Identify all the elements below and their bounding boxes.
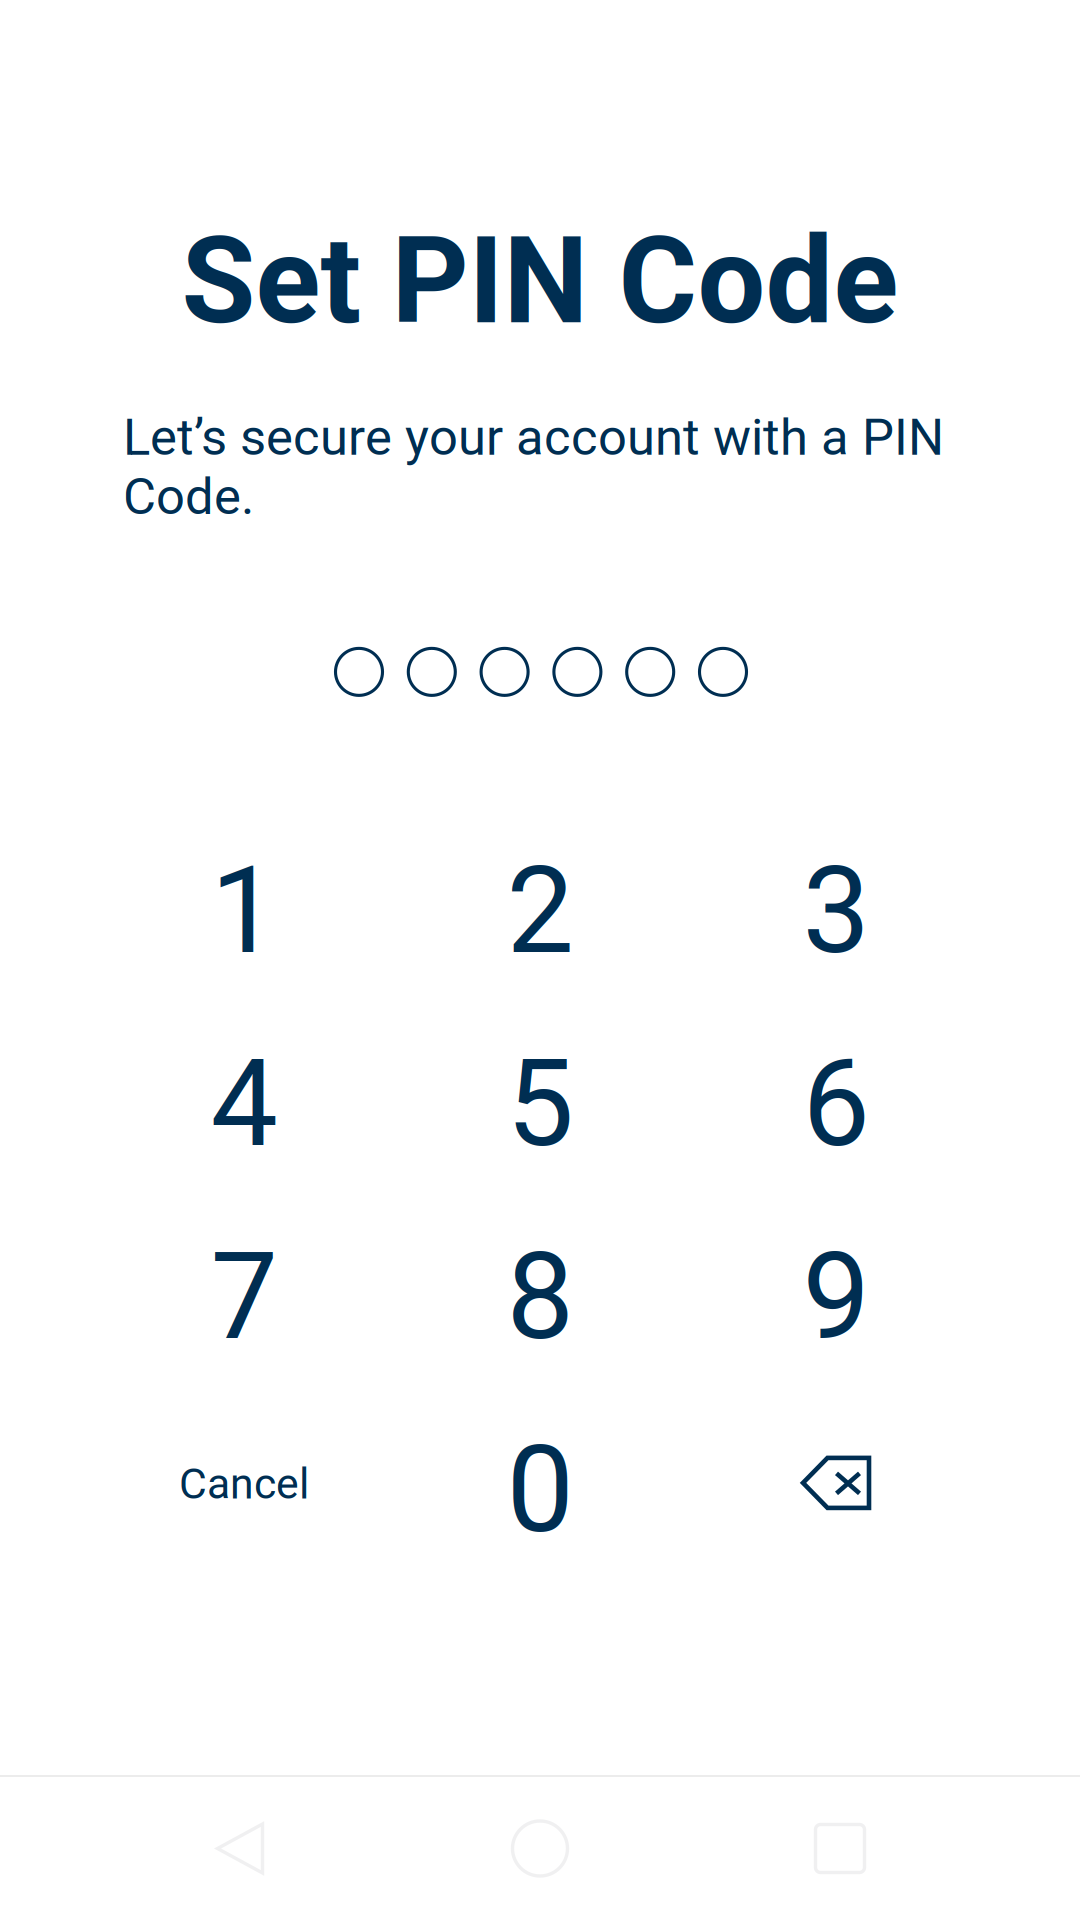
button[interactable]: 6 (688, 1007, 984, 1200)
button[interactable]: Cancel (96, 1393, 392, 1586)
button[interactable]: 3 (688, 814, 984, 1007)
staticText: 3 (802, 841, 869, 981)
staticText: 0 (506, 1420, 573, 1560)
button[interactable]: 2 (392, 814, 688, 1007)
button[interactable]: Delete (688, 1393, 984, 1586)
button[interactable]: 4 (96, 1007, 392, 1200)
staticText: 7 (210, 1227, 277, 1367)
staticText: Set PIN Code (181, 211, 898, 352)
staticText: 6 (802, 1034, 869, 1174)
staticText: 4 (210, 1034, 277, 1174)
button[interactable]: 7 (96, 1200, 392, 1393)
staticText: 2 (506, 841, 573, 981)
button[interactable]: 9 (688, 1200, 984, 1393)
staticText: 1 (210, 841, 277, 981)
button[interactable]: 1 (96, 814, 392, 1007)
staticText: 5 (506, 1034, 573, 1174)
button[interactable]: 8 (392, 1200, 688, 1393)
staticText: 8 (506, 1227, 573, 1367)
staticText: Let’s secure your account with a PIN Cod… (123, 408, 944, 526)
staticText: 9 (802, 1227, 869, 1367)
staticText: Cancel (179, 1459, 309, 1509)
button[interactable]: 5 (392, 1007, 688, 1200)
button[interactable]: 0 (392, 1393, 688, 1586)
